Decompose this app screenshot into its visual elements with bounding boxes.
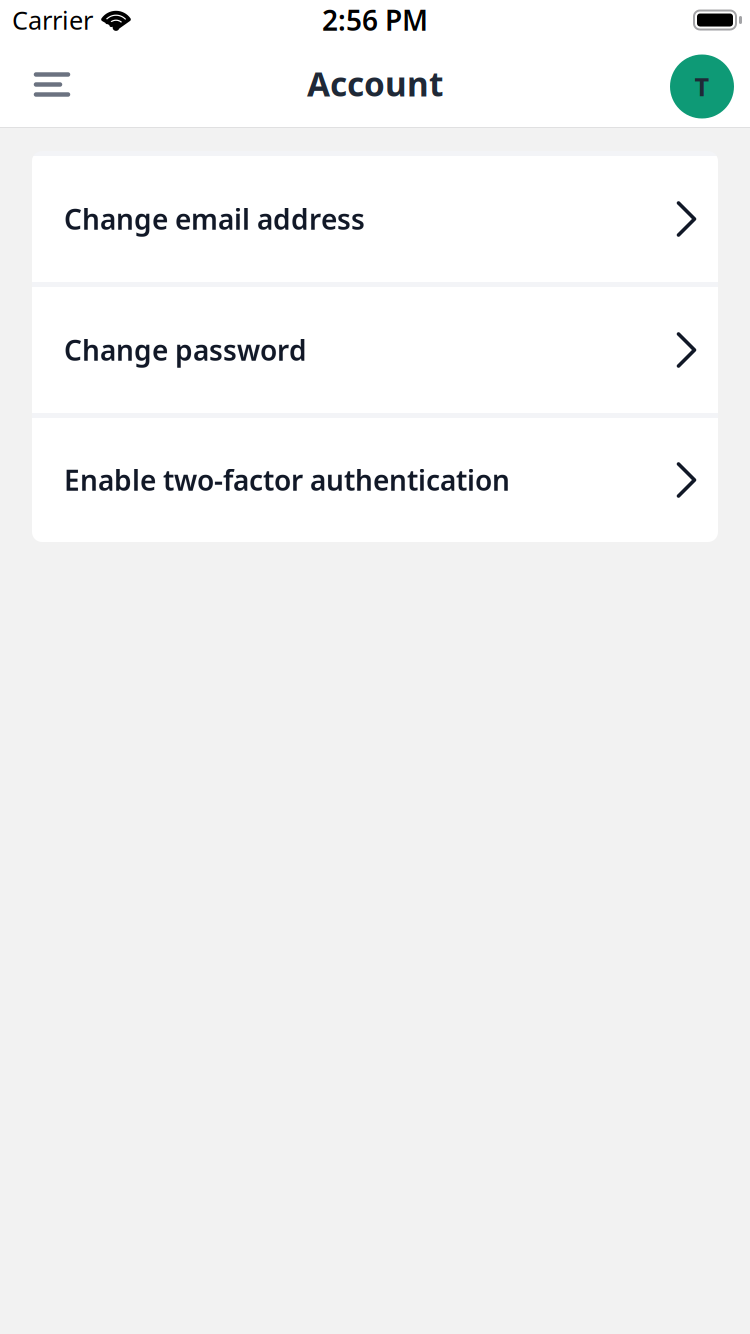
staticText: Enable two-factor authentication	[64, 461, 510, 499]
staticText: Account	[307, 61, 443, 106]
staticText: Change email address	[64, 200, 365, 238]
button[interactable]: Change email address	[32, 156, 718, 282]
button[interactable]: Enable two-factor authentication	[32, 418, 718, 542]
button[interactable]: Change password	[32, 287, 718, 413]
staticText: 2:56 PM	[322, 1, 428, 39]
button[interactable]: Profile	[670, 51, 734, 115]
staticText: T	[694, 70, 709, 103]
staticText: Carrier	[12, 3, 93, 37]
staticText: Change password	[64, 331, 307, 369]
button[interactable]: Menu	[32, 70, 70, 97]
